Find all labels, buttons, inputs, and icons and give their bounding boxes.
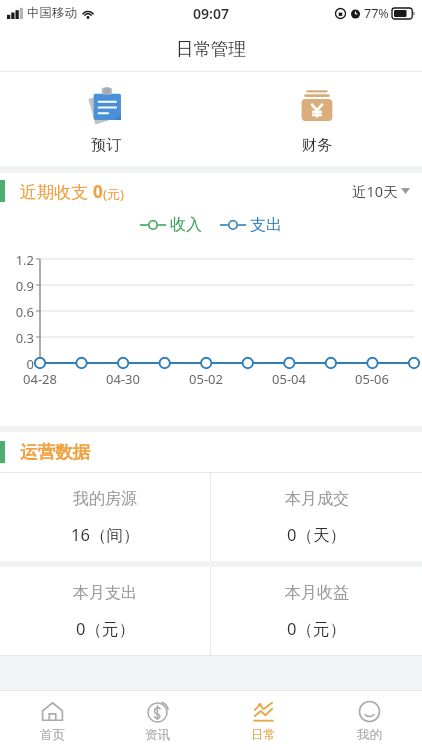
button[interactable]: 我的房源 — [0, 473, 210, 561]
staticText: 资讯 — [145, 727, 170, 743]
staticText: 本月收益 — [285, 583, 349, 603]
staticText: 近期收支 — [20, 180, 93, 203]
staticText: 05-06 — [350, 370, 394, 388]
staticText: 近10天 — [352, 181, 398, 201]
staticText: 09:07 — [193, 4, 229, 23]
button[interactable]: 本月成交 — [211, 473, 422, 561]
staticText: 05-02 — [184, 370, 228, 388]
staticText: 04-30 — [101, 370, 145, 388]
staticText: 0 — [2, 355, 34, 373]
staticText: 1.2 — [2, 251, 34, 269]
button[interactable]: 财务 — [211, 78, 422, 161]
staticText: (元) — [103, 185, 124, 203]
button[interactable]: 日常 — [210, 691, 316, 750]
staticText: 本月成交 — [285, 489, 349, 509]
staticText: 77% — [364, 5, 389, 22]
button[interactable]: 我的 — [316, 691, 422, 750]
staticText: 收入 — [170, 215, 202, 235]
staticText: 0（天） — [287, 523, 346, 546]
staticText: 本月支出 — [73, 583, 137, 603]
staticText: 支出 — [250, 215, 282, 235]
staticText: 05-04 — [267, 370, 311, 388]
staticText: 首页 — [40, 727, 65, 743]
button[interactable]: 资讯 — [105, 691, 210, 750]
staticText: 0（元） — [76, 617, 135, 640]
staticText: 16（间） — [71, 523, 140, 546]
staticText: 运营数据 — [20, 441, 90, 463]
staticText: 0（元） — [287, 617, 346, 640]
staticText: 日常 — [251, 727, 276, 743]
button[interactable]: 近10天 — [340, 175, 422, 207]
button[interactable]: 首页 — [0, 691, 105, 750]
staticText: 预订 — [91, 136, 121, 155]
staticText: 日常管理 — [176, 38, 246, 60]
staticText: 我的 — [357, 727, 382, 743]
staticText: 0.6 — [2, 303, 34, 321]
staticText: 我的房源 — [73, 489, 137, 509]
staticText: 财务 — [302, 136, 332, 155]
button[interactable]: 本月支出 — [0, 567, 210, 655]
button[interactable]: 本月收益 — [211, 567, 422, 655]
staticText: 0.3 — [2, 329, 34, 347]
button[interactable]: 预订 — [0, 78, 211, 161]
staticText: 04-28 — [18, 370, 62, 388]
staticText: 0 — [93, 180, 103, 203]
staticText: 0.9 — [2, 277, 34, 295]
staticText: 中国移动 — [27, 5, 77, 21]
